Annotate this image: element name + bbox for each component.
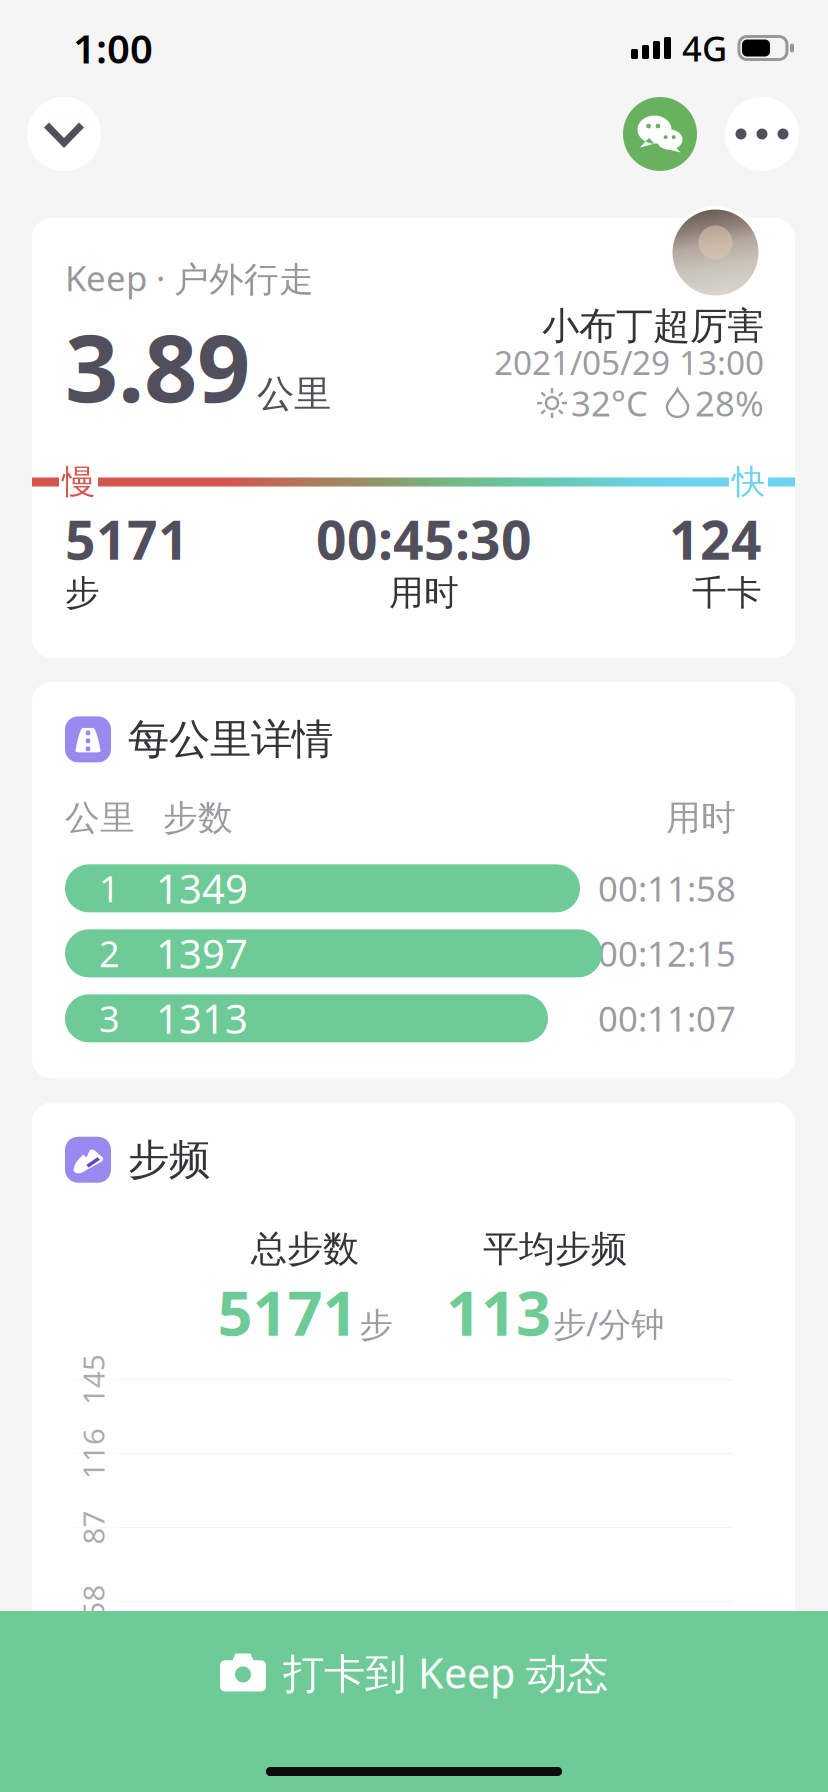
staticText: 打卡到 Keep 动态 xyxy=(283,1645,608,1700)
staticText: 145 xyxy=(67,1360,118,1399)
staticText: 1349 xyxy=(156,862,248,915)
staticText: 1397 xyxy=(156,927,248,980)
staticText: 2 xyxy=(99,929,120,977)
staticText: 用时 xyxy=(389,572,459,614)
button[interactable]: Collapse xyxy=(27,97,101,171)
staticText: 公里 xyxy=(257,371,331,417)
staticText: 步/分钟 xyxy=(553,1301,664,1346)
staticText: 00:11:07 xyxy=(598,995,736,1041)
staticText: 28% xyxy=(695,380,764,426)
button[interactable]: Share to WeChat xyxy=(623,97,697,171)
staticText: 快 xyxy=(732,461,765,502)
staticText: 00:11:58 xyxy=(598,865,736,911)
button[interactable]: More options xyxy=(725,97,799,171)
staticText: 124 xyxy=(669,504,762,574)
staticText: 87 xyxy=(76,1508,110,1547)
staticText: 千卡 xyxy=(692,572,762,614)
staticText: 步 xyxy=(65,572,100,614)
staticText: 32°C xyxy=(571,380,648,426)
staticText: 113 xyxy=(446,1271,551,1352)
staticText: 总步数 xyxy=(251,1227,359,1271)
staticText: 步 xyxy=(359,1305,392,1345)
staticText: 5171 xyxy=(217,1271,357,1352)
staticText: 116 xyxy=(67,1434,118,1473)
staticText: 00:45:30 xyxy=(316,504,532,574)
staticText: 58 xyxy=(76,1582,110,1621)
staticText: 3.89 xyxy=(65,304,250,428)
button[interactable]: 打卡到 Keep 动态 xyxy=(0,1611,828,1792)
staticText: Keep · 户外行走 xyxy=(65,255,314,301)
staticText: 慢 xyxy=(62,461,95,502)
staticText: 3 xyxy=(99,994,120,1042)
staticText: 每公里详情 xyxy=(128,714,333,765)
staticText: 公里 xyxy=(65,797,135,839)
staticText: 平均步频 xyxy=(483,1227,627,1271)
staticText: 步频 xyxy=(128,1134,210,1185)
staticText: 步数 xyxy=(163,797,233,839)
staticText: 1:00 xyxy=(73,21,153,74)
staticText: 小布丁超厉害 xyxy=(542,303,764,349)
staticText: 用时 xyxy=(666,797,736,839)
staticText: 1 xyxy=(99,864,120,912)
staticText: 1313 xyxy=(156,992,248,1045)
staticText: 00:12:15 xyxy=(598,930,736,976)
staticText: 5171 xyxy=(65,504,189,574)
staticText: 2021/05/29 13:00 xyxy=(494,340,764,384)
staticText: 4G xyxy=(682,25,727,71)
